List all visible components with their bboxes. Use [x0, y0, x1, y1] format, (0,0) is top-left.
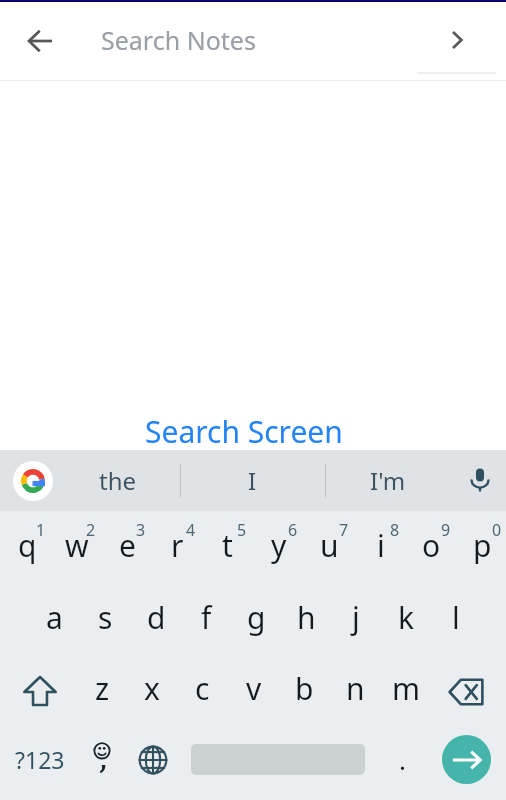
- staticText: I'm: [370, 464, 406, 497]
- button[interactable]: h: [279, 582, 329, 653]
- button[interactable]: Google: [13, 461, 53, 501]
- staticText: s: [98, 597, 113, 638]
- button[interactable]: Shift: [0, 653, 75, 724]
- button[interactable]: Enter: [442, 735, 491, 784]
- button[interactable]: y: [251, 511, 302, 582]
- staticText: Search Screen: [145, 411, 343, 452]
- staticText: y: [271, 525, 287, 566]
- staticText: x: [144, 668, 160, 709]
- button[interactable]: Change language: [129, 724, 177, 795]
- staticText: z: [95, 668, 110, 709]
- button[interactable]: j: [329, 582, 379, 653]
- button[interactable]: r: [150, 511, 200, 582]
- staticText: k: [398, 597, 415, 638]
- staticText: p: [473, 525, 492, 566]
- button[interactable]: Emoji: [78, 724, 126, 795]
- button[interactable]: q: [0, 511, 50, 582]
- staticText: h: [297, 597, 316, 638]
- button[interactable]: .: [378, 724, 426, 795]
- staticText: 2: [86, 519, 96, 541]
- staticText: e: [119, 525, 136, 566]
- staticText: Search Notes: [101, 23, 256, 57]
- button[interactable]: the: [50, 450, 185, 511]
- staticText: .: [399, 742, 406, 777]
- staticText: 8: [390, 519, 400, 541]
- button[interactable]: I'm: [320, 450, 455, 511]
- button[interactable]: ?123: [4, 724, 76, 795]
- staticText: f: [201, 597, 212, 638]
- button[interactable]: d: [129, 582, 179, 653]
- staticText: the: [99, 464, 137, 497]
- staticText: u: [320, 525, 339, 566]
- button[interactable]: l: [429, 582, 479, 653]
- button[interactable]: s: [78, 582, 129, 653]
- staticText: d: [147, 597, 166, 638]
- staticText: m: [392, 668, 421, 709]
- staticText: r: [171, 525, 184, 566]
- staticText: i: [377, 525, 385, 566]
- button[interactable]: u: [302, 511, 353, 582]
- button[interactable]: x: [125, 653, 175, 724]
- button[interactable]: I: [185, 450, 320, 511]
- button[interactable]: Submit search: [434, 17, 480, 63]
- staticText: ?123: [15, 744, 65, 775]
- staticText: b: [295, 668, 314, 709]
- staticText: j: [352, 597, 360, 638]
- button[interactable]: p: [455, 511, 506, 582]
- staticText: 7: [339, 519, 349, 541]
- button[interactable]: a: [27, 582, 78, 653]
- staticText: g: [247, 597, 266, 638]
- button[interactable]: b: [277, 653, 328, 724]
- staticText: t: [222, 525, 233, 566]
- button[interactable]: w: [50, 511, 100, 582]
- staticText: q: [18, 525, 37, 566]
- staticText: n: [346, 668, 365, 709]
- button[interactable]: f: [179, 582, 229, 653]
- staticText: 0: [492, 519, 502, 541]
- staticText: w: [65, 525, 89, 566]
- button[interactable]: k: [379, 582, 429, 653]
- button[interactable]: c: [175, 653, 226, 724]
- staticText: I: [248, 464, 257, 497]
- button[interactable]: v: [226, 653, 277, 724]
- button[interactable]: e: [100, 511, 150, 582]
- button[interactable]: i: [353, 511, 404, 582]
- button[interactable]: g: [229, 582, 279, 653]
- button[interactable]: Backspace: [430, 653, 506, 724]
- button[interactable]: o: [404, 511, 455, 582]
- staticText: 9: [441, 519, 451, 541]
- staticText: 6: [288, 519, 298, 541]
- staticText: a: [46, 597, 63, 638]
- staticText: 4: [186, 519, 196, 541]
- button[interactable]: t: [200, 511, 251, 582]
- button[interactable]: m: [379, 653, 430, 724]
- staticText: v: [246, 668, 262, 709]
- button[interactable]: Voice input: [450, 450, 506, 511]
- staticText: l: [452, 597, 460, 638]
- staticText: o: [422, 525, 441, 566]
- staticText: 1: [36, 519, 46, 541]
- button[interactable]: n: [328, 653, 379, 724]
- button[interactable]: Back: [16, 18, 62, 64]
- staticText: 3: [136, 519, 146, 541]
- button[interactable]: z: [75, 653, 125, 724]
- staticText: 5: [237, 519, 247, 541]
- staticText: c: [195, 668, 210, 709]
